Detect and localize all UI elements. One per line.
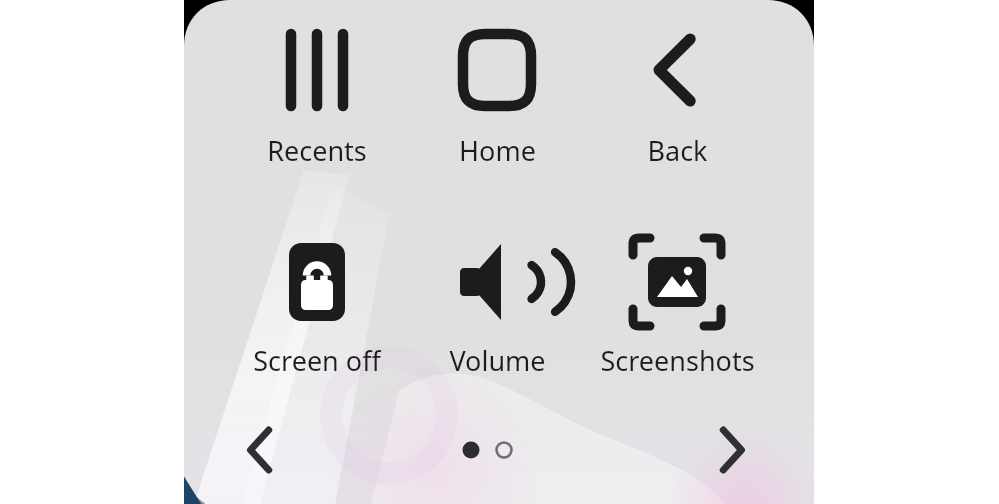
button[interactable]: Previous page	[233, 422, 289, 478]
staticText: Recents	[267, 132, 367, 168]
button[interactable]	[411, 14, 583, 166]
button[interactable]	[231, 224, 403, 376]
button[interactable]	[411, 224, 583, 376]
staticText: Back	[647, 132, 708, 168]
button[interactable]: Page 1	[456, 435, 486, 465]
button[interactable]: Page 2	[489, 435, 519, 465]
button[interactable]: Next page	[703, 422, 759, 478]
button[interactable]	[231, 14, 403, 166]
staticText: Screenshots	[600, 342, 755, 378]
staticText: Home	[459, 132, 536, 168]
button[interactable]	[591, 14, 763, 166]
button[interactable]	[591, 224, 763, 376]
staticText: Screen off	[253, 342, 381, 378]
staticText: Volume	[449, 342, 546, 378]
